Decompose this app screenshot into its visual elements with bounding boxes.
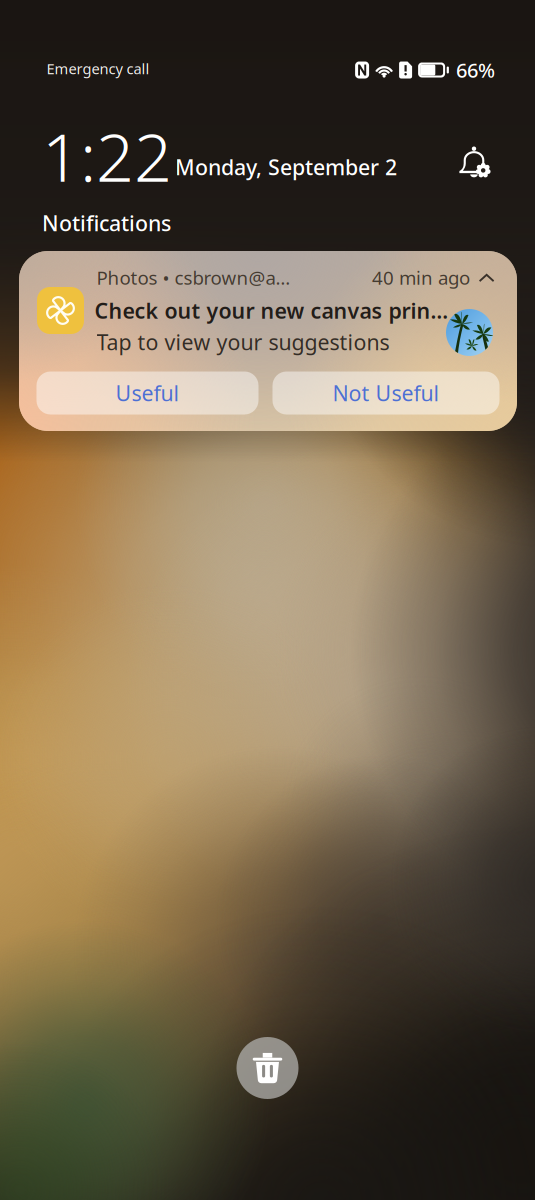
button[interactable]: Useful xyxy=(36,371,258,414)
staticText: Useful xyxy=(115,379,179,407)
staticText: 40 min ago xyxy=(372,265,470,290)
staticText: Emergency call xyxy=(46,59,149,78)
staticText: 66% xyxy=(456,57,495,83)
button[interactable]: Clear all notifications xyxy=(236,1037,298,1099)
button[interactable]: Collapse notification xyxy=(471,265,503,291)
staticText: Not Useful xyxy=(332,379,439,407)
staticText: Photos • csbrown@a… xyxy=(96,265,290,290)
button[interactable]: Notification settings xyxy=(457,147,491,178)
staticText: Notifications xyxy=(42,209,171,237)
button[interactable]: Not Useful xyxy=(272,371,499,414)
staticText: Tap to view your suggestions xyxy=(96,328,389,356)
staticText: Monday, September 2 xyxy=(175,153,397,181)
staticText: Check out your new canvas prin… xyxy=(94,296,448,325)
staticText: 1:22 xyxy=(42,112,172,200)
